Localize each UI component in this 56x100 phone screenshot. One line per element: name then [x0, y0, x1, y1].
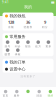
button[interactable]: 常用服务 — [2, 33, 53, 40]
button[interactable]: 缴费 — [2, 48, 13, 56]
staticText: 9 — [44, 19, 46, 25]
button[interactable]: 设置中心 — [2, 66, 53, 73]
staticText: 报告 — [25, 45, 31, 48]
button[interactable]: 我的订单 — [2, 59, 53, 66]
staticText: 36 — [26, 19, 30, 25]
button[interactable]: 首页 — [0, 87, 11, 100]
button[interactable]: 我的钱包 — [2, 12, 53, 19]
button[interactable]: 更多 — [43, 40, 53, 48]
staticText: 更多 — [45, 45, 51, 48]
staticText: 设置中心 — [9, 67, 25, 72]
staticText: 服务 — [14, 94, 20, 97]
staticText: 我的 — [24, 4, 32, 9]
button[interactable] — [22, 87, 34, 100]
staticText: 体检 — [15, 53, 21, 56]
button[interactable]: 消息 — [34, 87, 45, 100]
button[interactable]: 报告 — [23, 40, 33, 48]
staticText: 缴费 — [5, 53, 11, 56]
button[interactable]: 处方 — [33, 40, 43, 48]
staticText: 我的订单 — [9, 60, 25, 65]
staticText: 余额 — [8, 25, 14, 29]
staticText: 问诊 — [15, 45, 21, 48]
staticText: 积分 — [42, 25, 48, 29]
staticText: 常用服务 — [9, 34, 25, 39]
button[interactable]: 体检 — [13, 48, 23, 56]
button[interactable]: 服务 — [11, 87, 22, 100]
staticText: 没有更多了 — [20, 75, 35, 78]
staticText: 首页 — [3, 94, 9, 97]
staticText: 9:41 — [2, 0, 9, 4]
staticText: 优惠券 — [23, 25, 32, 29]
staticText: 128 — [8, 19, 14, 25]
staticText: 挂号 — [5, 45, 11, 48]
staticText: 我的钱包 — [9, 13, 25, 18]
button[interactable]: 我的 — [45, 87, 56, 100]
staticText: 消息 — [36, 94, 42, 97]
button[interactable]: 问诊 — [13, 40, 23, 48]
button[interactable]: 挂号 — [2, 40, 13, 48]
staticText: ▮▮▮ — [51, 1, 54, 4]
staticText: 处方 — [35, 45, 41, 48]
staticText: 我的 — [47, 94, 53, 97]
